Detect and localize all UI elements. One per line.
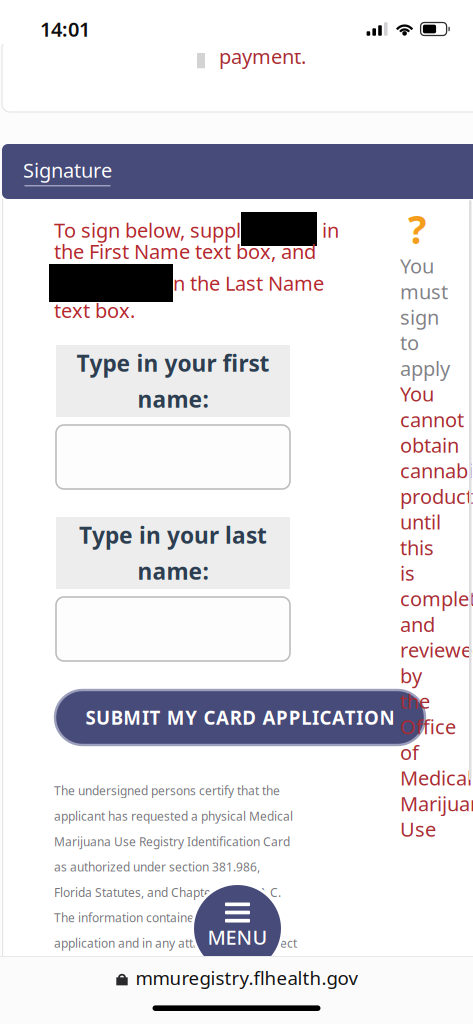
staticText: is [400, 560, 415, 586]
staticText: Florida Statutes, and Chapter 64-4, F.A.… [54, 884, 281, 900]
button[interactable]: Menu [191, 882, 284, 975]
staticText: name: [137, 556, 208, 586]
staticText: name: [137, 384, 208, 414]
staticText: to [400, 329, 419, 356]
staticText: Marijuana [400, 790, 473, 817]
staticText: text box. [54, 297, 135, 324]
staticText: of [400, 739, 419, 765]
staticText: by [400, 662, 422, 689]
staticText: the [400, 688, 430, 714]
staticText: obtain [400, 432, 459, 458]
staticText: products [400, 483, 473, 509]
staticText: complete [400, 585, 473, 612]
staticText: MENU [207, 924, 267, 950]
staticText: reviewed [400, 636, 473, 663]
staticText: sign [400, 304, 439, 330]
staticText: must [400, 278, 448, 305]
staticText: the First Name text box, and [54, 238, 316, 265]
staticText: mmuregistry.flhealth.gov [135, 965, 357, 990]
staticText: Marijuana Use Registry Identification Ca… [54, 833, 290, 849]
staticText: SUBMIT MY CARD APPLICATION [85, 705, 394, 730]
staticText: as authorized under section 381.986, [54, 859, 260, 875]
staticText: this [400, 534, 434, 561]
staticText: and [400, 611, 435, 637]
staticText: To sign below, suppl [54, 217, 241, 243]
staticText: cannabis [400, 457, 473, 484]
staticText: payment. [219, 43, 306, 70]
staticText: You [400, 252, 434, 279]
staticText: applicant has requested a physical Medic… [54, 808, 293, 824]
staticText: Use [400, 816, 436, 842]
staticText: ? [408, 203, 426, 255]
staticText: until [400, 508, 441, 535]
staticText: apply [400, 355, 450, 381]
staticText: The undersigned persons certify that the [54, 783, 280, 799]
staticText: cannot [400, 406, 464, 433]
staticText: The information contained in this [54, 910, 237, 926]
staticText: 14:01 [40, 16, 90, 42]
staticText: n the Last Name [173, 270, 324, 296]
staticText: in [317, 217, 339, 243]
staticText: Type in your first [76, 348, 269, 378]
button[interactable]: SUBMIT MY CARD APPLICATION [55, 690, 425, 745]
staticText: Signature [23, 157, 112, 183]
staticText: You [400, 380, 434, 407]
staticText: Medical [400, 764, 472, 791]
staticText: Office [400, 713, 456, 740]
button[interactable]: mmuregistry.flhealth.gov [0, 957, 473, 999]
staticText: application and in any attachment is cor… [54, 935, 297, 951]
button[interactable]: Text input [56, 597, 290, 661]
staticText: Type in your last [79, 520, 267, 550]
button[interactable]: Text input [56, 425, 290, 489]
